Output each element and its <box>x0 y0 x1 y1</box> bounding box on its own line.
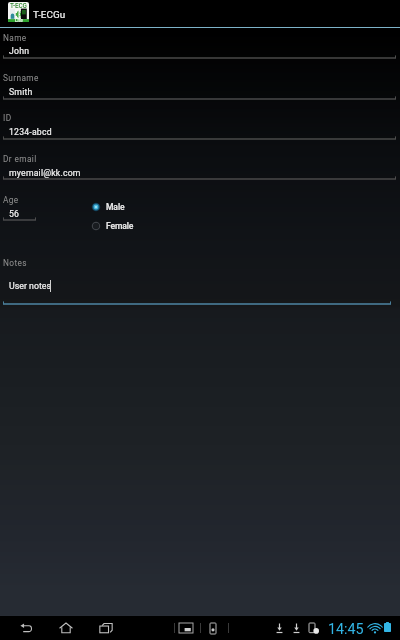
staticText: Female <box>106 221 134 231</box>
button[interactable]: Recent apps <box>93 616 119 640</box>
staticText: Age <box>3 195 19 205</box>
staticText: 14:45 <box>328 621 364 638</box>
staticText: T-ECGu <box>33 9 66 21</box>
staticText: Name <box>3 33 27 43</box>
staticText: User notes <box>9 281 52 291</box>
button[interactable]: Screen <box>179 623 193 633</box>
staticText: John <box>9 46 30 56</box>
staticText: Surname <box>3 73 39 83</box>
staticText: 56 <box>9 209 20 219</box>
button[interactable]: Female <box>88 217 134 235</box>
button[interactable]: Back <box>13 616 39 640</box>
button[interactable]: Home <box>53 616 79 640</box>
staticText: Lite <box>15 18 23 23</box>
staticText: Notes <box>3 258 27 268</box>
button[interactable]: Device <box>210 623 216 634</box>
staticText: T-ECG <box>10 2 27 10</box>
staticText: ID <box>3 113 12 123</box>
staticText: Male <box>106 202 125 212</box>
button[interactable]: Male <box>88 198 125 216</box>
staticText: 1234-abcd <box>9 127 52 137</box>
staticText: myemail@kk.com <box>9 168 81 178</box>
staticText: Smith <box>9 87 33 97</box>
staticText: Dr email <box>3 154 37 164</box>
